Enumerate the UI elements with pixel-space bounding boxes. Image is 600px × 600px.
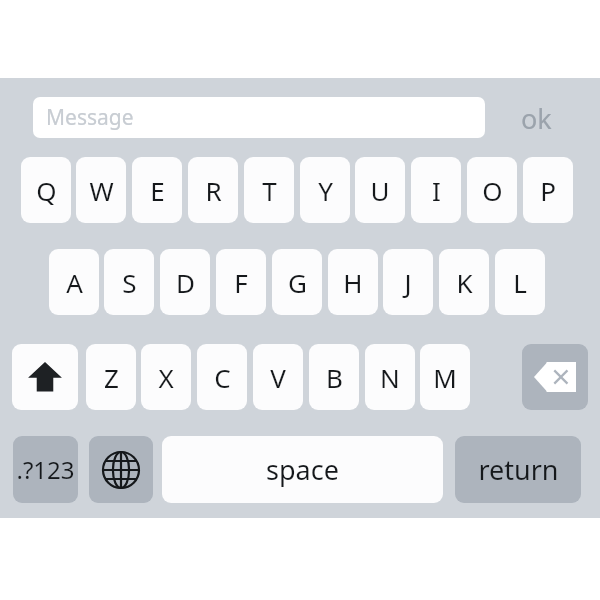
staticText: Message (46, 103, 134, 132)
staticText: H (343, 265, 363, 300)
staticText: Y (318, 173, 333, 208)
staticText: Q (36, 173, 57, 208)
button[interactable]: X (141, 344, 191, 410)
staticText: Z (104, 360, 119, 395)
staticText: O (482, 173, 503, 208)
staticText: ok (521, 100, 552, 137)
staticText: V (270, 360, 286, 395)
button[interactable]: E (132, 157, 182, 223)
staticText: W (89, 173, 114, 208)
button[interactable]: V (253, 344, 303, 410)
button[interactable]: .?123 (13, 436, 78, 503)
button[interactable]: J (383, 249, 433, 315)
staticText: U (370, 173, 390, 208)
button[interactable]: P (523, 157, 573, 223)
staticText: .?123 (16, 453, 75, 486)
staticText: B (326, 360, 343, 395)
staticText: R (205, 173, 222, 208)
staticText: S (122, 265, 137, 300)
staticText: K (456, 265, 473, 300)
staticText: space (266, 451, 339, 488)
staticText: I (432, 173, 441, 208)
button[interactable]: K (439, 249, 489, 315)
button[interactable]: R (188, 157, 238, 223)
button[interactable]: ok (503, 98, 569, 138)
button[interactable]: F (216, 249, 266, 315)
staticText: L (513, 265, 527, 300)
staticText: return (478, 451, 559, 488)
staticText: A (66, 265, 83, 300)
button[interactable]: L (495, 249, 545, 315)
button[interactable]: A (49, 249, 99, 315)
button[interactable]: Message (33, 97, 485, 138)
staticText: C (214, 360, 231, 395)
staticText: M (433, 360, 457, 395)
staticText: E (150, 173, 165, 208)
button[interactable]: N (365, 344, 415, 410)
button[interactable]: O (467, 157, 517, 223)
button[interactable]: C (197, 344, 247, 410)
button[interactable]: U (355, 157, 405, 223)
button[interactable]: Q (21, 157, 71, 223)
button[interactable]: D (160, 249, 210, 315)
button[interactable]: Y (300, 157, 350, 223)
button[interactable]: Change keyboard (89, 436, 153, 503)
button[interactable]: S (104, 249, 154, 315)
staticText: N (380, 360, 400, 395)
button[interactable]: M (420, 344, 470, 410)
button[interactable]: I (411, 157, 461, 223)
staticText: D (176, 265, 195, 300)
button[interactable]: Backspace (522, 344, 588, 410)
staticText: J (404, 265, 412, 300)
staticText: X (158, 360, 174, 395)
staticText: F (234, 265, 248, 300)
button[interactable]: G (272, 249, 322, 315)
button[interactable]: B (309, 344, 359, 410)
staticText: T (262, 173, 277, 208)
staticText: G (288, 265, 307, 300)
button[interactable]: return (455, 436, 581, 503)
button[interactable]: space (162, 436, 443, 503)
button[interactable]: Shift (12, 344, 78, 410)
button[interactable]: T (244, 157, 294, 223)
button[interactable]: W (76, 157, 126, 223)
staticText: P (540, 173, 556, 208)
button[interactable]: H (328, 249, 378, 315)
button[interactable]: Z (86, 344, 136, 410)
